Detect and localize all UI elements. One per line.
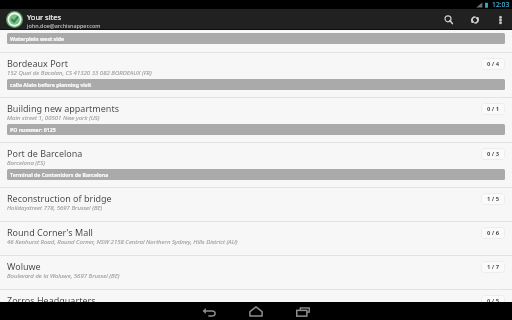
button[interactable]: Bordeaux Port [0,52,512,97]
staticText: calla Alain before planning visit [10,81,92,88]
staticText: Bordeaux Port [7,57,69,69]
staticText: Terminal de Contenidors de Barcelona [10,171,109,178]
staticText: Main street 1, 00501 New york (US) [7,114,100,122]
staticText: Port de Barcelona [7,147,83,159]
button[interactable]: Waterplein west side [0,30,512,52]
button[interactable]: Recent apps [283,302,323,320]
staticText: Round Corner's Mall [7,226,93,238]
button[interactable]: Zorros Headquarters [0,289,512,302]
staticText: 0 / 5 [487,297,500,302]
staticText: 1 / 5 [487,195,500,203]
button[interactable]: More options [488,9,512,30]
staticText: PO nummer: 0125 [10,126,56,133]
staticText: Holidaystreet 778, 5697 Brussel (BE) [7,204,103,212]
button[interactable]: Port de Barcelona [0,142,512,187]
staticText: 0 / 4 [487,60,500,68]
staticText: 152 Quai de Bacalan, CS 41320 33 082 BOR… [7,69,152,77]
staticText: john.doe@archisnapper.com [27,22,101,29]
staticText: 1 / 7 [487,263,500,271]
staticText: Reconstruction of bridge [7,192,112,204]
button[interactable]: Reconstruction of bridge [0,187,512,221]
staticText: 46 Kenhurst Road, Round Corner, NSW 2158… [7,238,238,246]
staticText: Waterplein west side [10,35,65,42]
staticText: Barcelona (ES) [7,159,45,167]
button[interactable]: Woluwe [0,255,512,289]
staticText: 0 / 3 [487,150,500,158]
staticText: Boulevard de la Woluwe, 5697 Brussel (BE… [7,272,120,280]
staticText: 0 / 6 [487,229,500,237]
staticText: 12:03 [492,0,510,9]
button[interactable]: Building new appartments [0,97,512,142]
button[interactable]: Refresh [462,9,488,30]
button[interactable]: Round Corner's Mall [0,221,512,255]
staticText: Building new appartments [7,102,119,114]
staticText: Woluwe [7,260,41,272]
button[interactable]: Home [236,302,276,320]
staticText: Your sites [27,12,62,22]
button[interactable]: Back [189,302,229,320]
staticText: Zorros Headquarters [7,294,96,302]
staticText: 0 / 1 [487,105,500,113]
button[interactable]: Search [436,9,462,30]
